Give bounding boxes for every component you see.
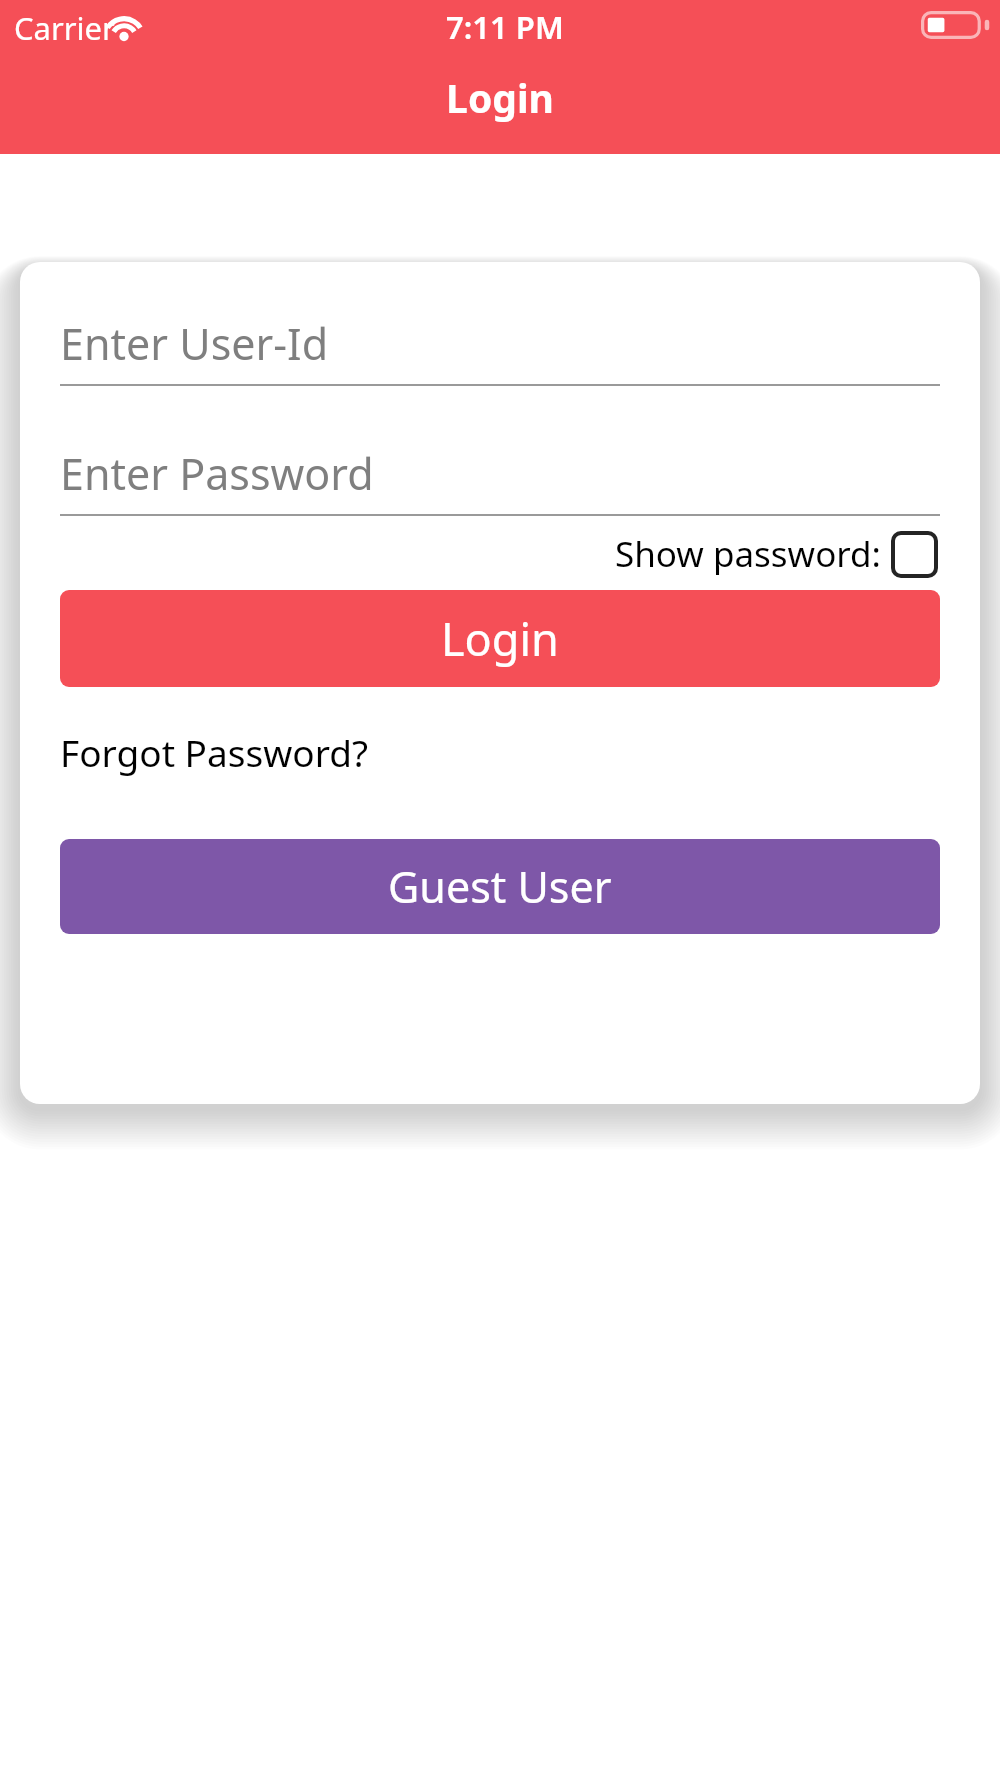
button[interactable]: Enter User-Id xyxy=(60,314,940,386)
staticText: 7:11 PM xyxy=(446,6,564,48)
staticText: Carrier xyxy=(14,7,115,49)
button[interactable]: Guest User xyxy=(60,839,940,934)
button[interactable]: Forgot Password? xyxy=(60,727,369,777)
staticText: Enter User-Id xyxy=(60,314,329,373)
staticText: Enter Password xyxy=(60,444,374,503)
button[interactable]: Show password: xyxy=(20,530,938,578)
staticText: Show password: xyxy=(615,530,881,578)
button[interactable]: Login xyxy=(60,590,940,687)
staticText: Login xyxy=(441,608,559,669)
other: Wi-Fi signal xyxy=(103,11,145,41)
staticText: Login xyxy=(0,71,1000,124)
other: Battery level xyxy=(921,11,991,39)
staticText: Guest User xyxy=(388,857,612,916)
button[interactable]: Enter Password xyxy=(60,444,940,516)
